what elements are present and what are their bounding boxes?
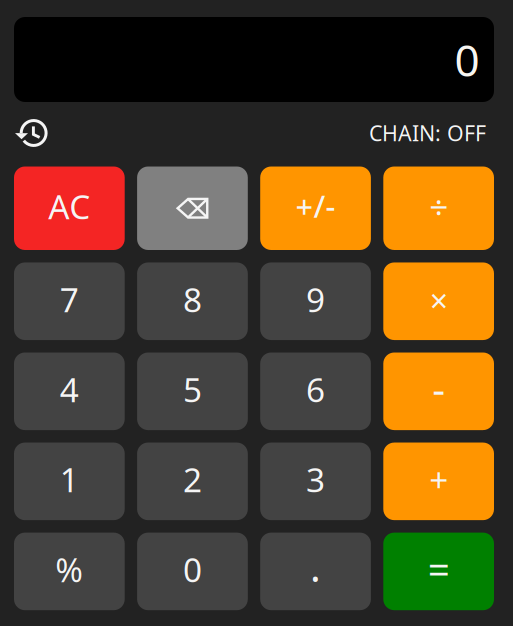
staticText: CHAIN: OFF (369, 119, 486, 147)
staticText: +/- (296, 185, 336, 226)
staticText: 2 (183, 457, 202, 501)
button[interactable]: 2 (137, 443, 248, 520)
staticText: = (428, 543, 450, 594)
staticText: 9 (306, 277, 325, 321)
button[interactable]: CHAIN: OFF (369, 119, 494, 147)
button[interactable]: 4 (14, 352, 125, 430)
button[interactable]: 9 (260, 262, 371, 340)
staticText: ÷ (429, 184, 448, 228)
staticText: - (432, 362, 445, 415)
button[interactable]: - (383, 352, 494, 430)
button[interactable]: + (383, 443, 494, 520)
button[interactable]: 7 (14, 262, 125, 340)
button[interactable]: ÷ (383, 166, 494, 250)
button[interactable]: 3 (260, 443, 371, 520)
button[interactable]: AC (14, 166, 125, 250)
button[interactable]: × (383, 262, 494, 340)
staticText: × (430, 279, 448, 321)
button[interactable]: 0 (137, 533, 248, 610)
staticText: 5 (183, 367, 202, 411)
staticText: 0 (183, 547, 202, 592)
button[interactable]: History (14, 117, 48, 149)
staticText: 8 (183, 277, 202, 321)
button[interactable]: % (14, 533, 125, 610)
staticText: % (55, 547, 83, 592)
staticText: 1 (60, 457, 79, 501)
button[interactable]: . (260, 533, 371, 610)
staticText: 0 (454, 30, 479, 89)
button[interactable]: 1 (14, 443, 125, 520)
staticText: 3 (306, 457, 325, 501)
button[interactable]: 5 (137, 352, 248, 430)
button[interactable]: Delete (137, 166, 248, 250)
button[interactable]: 8 (137, 262, 248, 340)
staticText: 7 (60, 277, 79, 321)
staticText: . (310, 540, 321, 593)
staticText: 4 (60, 367, 79, 411)
button[interactable]: = (383, 533, 494, 610)
staticText: + (429, 457, 448, 501)
button[interactable]: +/- (260, 166, 371, 250)
staticText: AC (48, 184, 90, 228)
staticText: 6 (306, 367, 325, 411)
button[interactable]: 6 (260, 352, 371, 430)
